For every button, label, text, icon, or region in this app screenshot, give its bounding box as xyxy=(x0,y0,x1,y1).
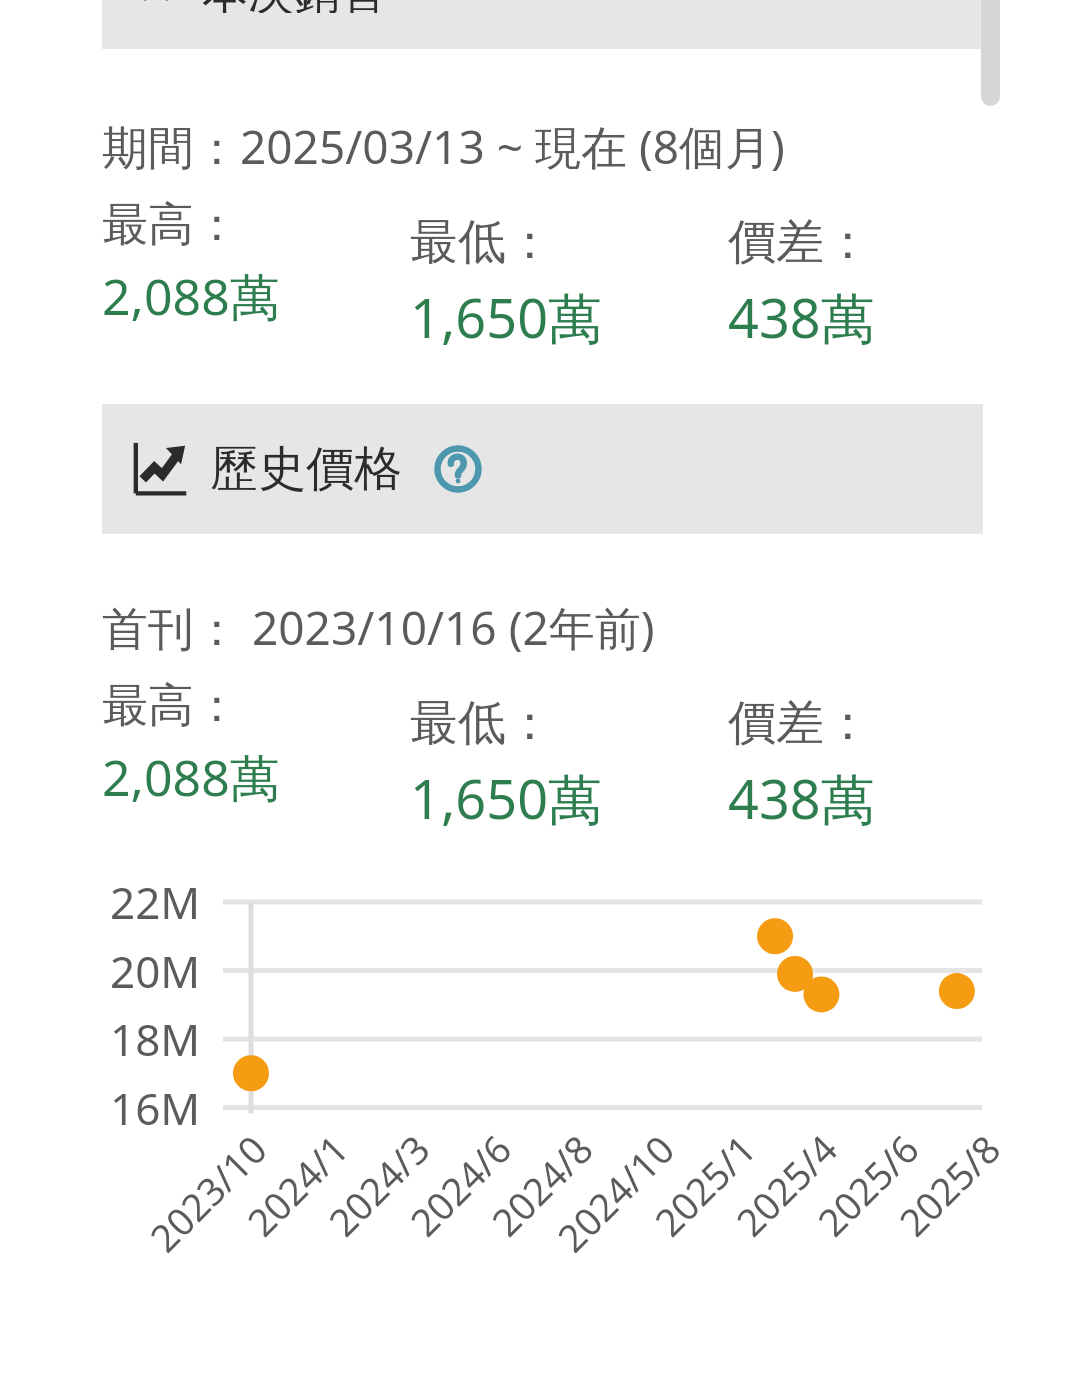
button[interactable]: 說明 xyxy=(432,443,484,495)
staticText: 期間：2025/03/13 ~ 現在 (8個月) xyxy=(102,115,785,178)
staticText: 價差： xyxy=(728,693,872,753)
staticText: 2,088萬 xyxy=(102,262,280,330)
staticText: 2,088萬 xyxy=(102,743,280,811)
staticText: 最低： xyxy=(410,693,554,753)
button[interactable]: 歷史價格 xyxy=(102,404,983,534)
staticText: 最低： xyxy=(410,212,554,272)
staticText: 首刊： 2023/10/16 (2年前) xyxy=(102,596,655,659)
staticText: 最高： xyxy=(102,196,240,254)
button[interactable]: 本次銷售 xyxy=(102,0,983,49)
staticText: 438萬 xyxy=(728,280,875,354)
staticText: 1,650萬 xyxy=(410,761,603,835)
staticText: 1,650萬 xyxy=(410,280,603,354)
staticText: 歷史價格 xyxy=(210,439,402,499)
staticText: 價差： xyxy=(728,212,872,272)
staticText: 438萬 xyxy=(728,761,875,835)
staticText: 最高： xyxy=(102,677,240,735)
staticText: 本次銷售 xyxy=(202,0,386,13)
